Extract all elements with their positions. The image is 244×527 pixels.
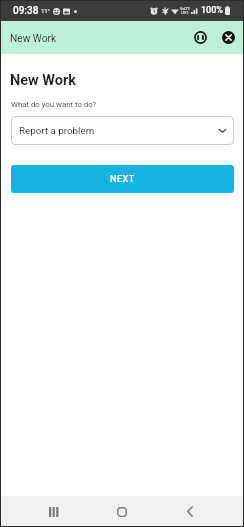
button[interactable]: Report a problem	[11, 116, 234, 145]
staticText: 11°	[41, 7, 50, 14]
staticText: 100%	[201, 5, 223, 16]
staticText: Report a problem	[19, 125, 95, 136]
staticText: VoLTE	[180, 7, 190, 11]
button[interactable]: Close	[218, 27, 239, 48]
button[interactable]: Home	[102, 496, 142, 527]
staticText: LTE1	[181, 11, 189, 15]
button[interactable]: Recents	[34, 496, 74, 527]
button[interactable]: Pause	[190, 27, 211, 48]
staticText: New Work	[10, 33, 57, 45]
staticText: New Work	[10, 72, 77, 89]
staticText: What do you want to do?	[11, 100, 97, 109]
staticText: NEXT	[110, 174, 135, 185]
button[interactable]: NEXT	[11, 165, 234, 193]
button[interactable]: Back	[170, 496, 210, 527]
staticText: 09:38	[13, 5, 39, 17]
